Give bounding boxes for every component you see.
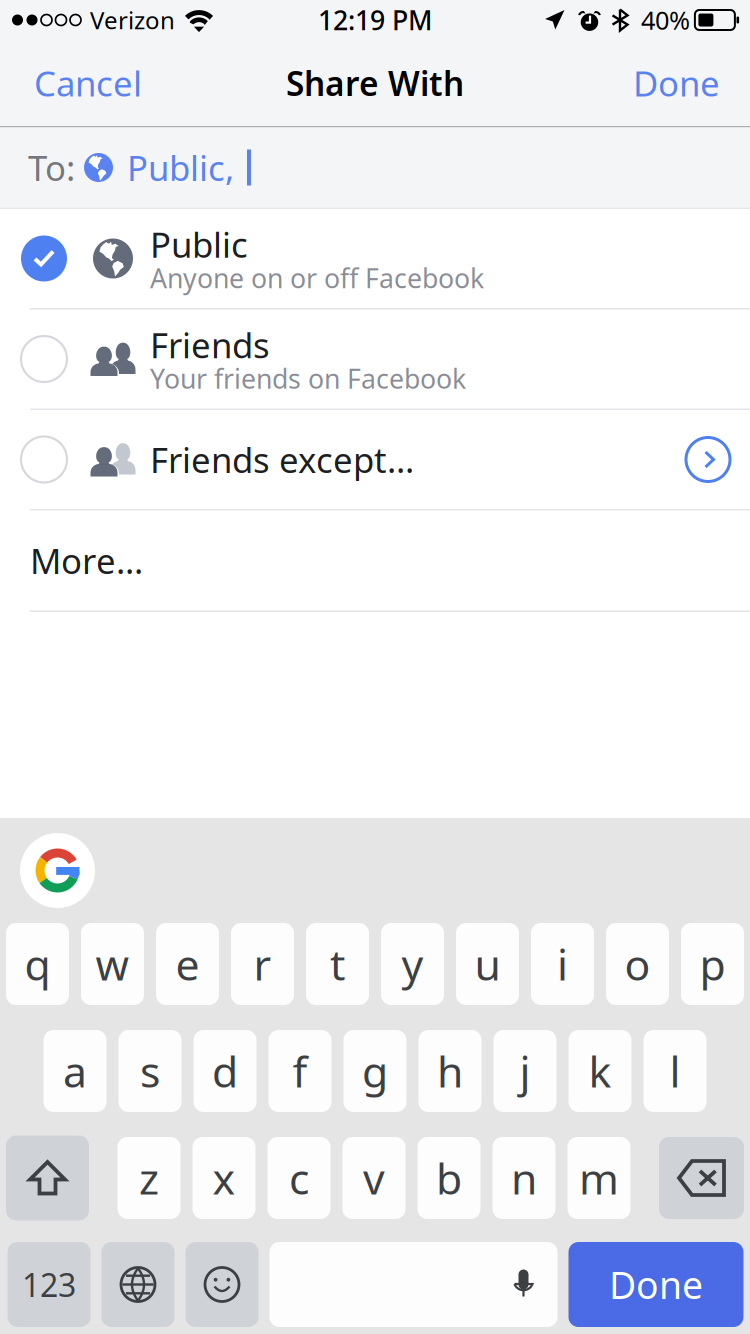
button[interactable]: r [231, 923, 294, 1005]
staticText: e [175, 936, 199, 992]
staticText: b [436, 1150, 462, 1206]
staticText: Done [633, 60, 720, 106]
button[interactable]: p [681, 923, 744, 1005]
staticText: Friends [150, 322, 270, 368]
button[interactable]: u [456, 923, 519, 1005]
button[interactable]: b [417, 1137, 480, 1219]
button[interactable]: Space [269, 1242, 557, 1327]
button[interactable]: Emoji [185, 1242, 258, 1327]
staticText: d [212, 1043, 238, 1099]
staticText: j [519, 1043, 530, 1099]
staticText: 12:19 PM [318, 2, 432, 38]
staticText: v [363, 1150, 385, 1206]
button[interactable]: Public [0, 209, 750, 309]
staticText: Done [609, 1260, 703, 1309]
staticText: u [474, 936, 500, 992]
button[interactable]: f [268, 1030, 331, 1112]
button[interactable]: j [493, 1030, 556, 1112]
button[interactable]: d [193, 1030, 256, 1112]
button[interactable]: Friends [0, 309, 750, 410]
button[interactable]: h [418, 1030, 481, 1112]
staticText: Cancel [34, 60, 142, 106]
button[interactable]: w [81, 923, 144, 1005]
staticText: Anyone on or off Facebook [150, 260, 484, 296]
staticText: i [557, 936, 568, 992]
button[interactable]: More... [0, 510, 750, 612]
staticText: r [253, 936, 271, 992]
button[interactable]: g [343, 1030, 406, 1112]
button[interactable]: Done [568, 1242, 743, 1327]
staticText: o [624, 936, 650, 992]
button[interactable]: v [342, 1137, 405, 1219]
staticText: w [95, 936, 129, 992]
button[interactable]: i [531, 923, 594, 1005]
button[interactable]: Switch keyboard [101, 1242, 174, 1327]
button[interactable]: Friends except... [0, 410, 750, 510]
button[interactable]: c [267, 1137, 330, 1219]
staticText: p [699, 936, 725, 992]
button[interactable]: x [192, 1137, 255, 1219]
staticText: q [24, 936, 50, 992]
staticText: To: [28, 144, 75, 190]
button[interactable]: Shift [6, 1135, 89, 1220]
button[interactable]: z [117, 1137, 180, 1219]
staticText: Public, [127, 144, 234, 190]
staticText: l [669, 1043, 680, 1099]
button[interactable]: m [567, 1137, 630, 1219]
staticText: a [63, 1043, 87, 1099]
button[interactable]: a [43, 1030, 106, 1112]
staticText: h [437, 1043, 463, 1099]
button[interactable]: y [381, 923, 444, 1005]
button[interactable]: k [568, 1030, 631, 1112]
staticText: s [140, 1043, 160, 1099]
staticText: 40% [641, 3, 690, 37]
staticText: c [289, 1150, 309, 1206]
staticText: Verizon [90, 4, 175, 36]
button[interactable]: Google search [20, 833, 95, 908]
button[interactable]: s [118, 1030, 181, 1112]
button[interactable]: o [606, 923, 669, 1005]
staticText: k [588, 1043, 611, 1099]
button[interactable]: Cancel [0, 40, 166, 126]
staticText: Your friends on Facebook [150, 361, 466, 396]
button[interactable]: 123 [7, 1242, 90, 1327]
staticText: Share With [286, 61, 464, 105]
button[interactable]: l [643, 1030, 706, 1112]
button[interactable]: e [156, 923, 219, 1005]
staticText: n [511, 1150, 537, 1206]
button[interactable]: n [492, 1137, 555, 1219]
staticText: z [139, 1150, 159, 1206]
staticText: g [362, 1043, 388, 1099]
button[interactable]: q [6, 923, 69, 1005]
staticText: x [212, 1150, 235, 1206]
staticText: More... [30, 537, 143, 583]
button[interactable]: t [306, 923, 369, 1005]
staticText: m [579, 1150, 619, 1206]
staticText: Friends except... [150, 436, 414, 482]
staticText: t [330, 936, 345, 992]
button[interactable]: Done [609, 40, 750, 126]
staticText: f [292, 1043, 307, 1099]
staticText: Public [150, 221, 248, 267]
staticText: 123 [22, 1263, 76, 1306]
staticText: y [401, 936, 423, 992]
button[interactable]: Backspace [659, 1137, 744, 1219]
